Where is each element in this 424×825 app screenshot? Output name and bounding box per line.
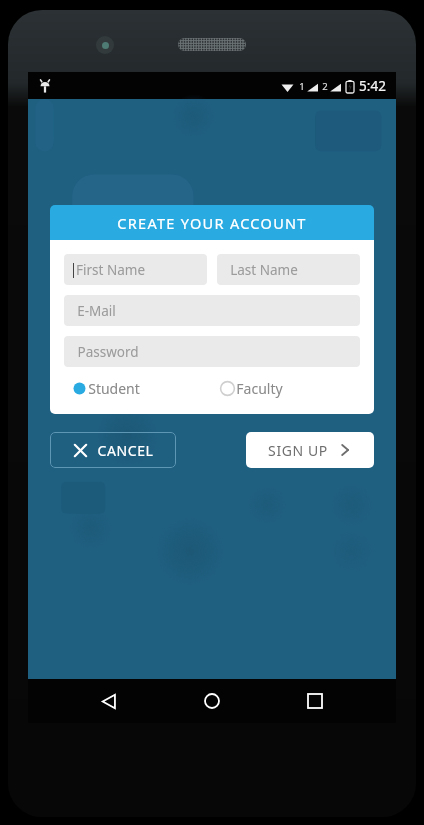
button[interactable]: Back <box>87 679 131 723</box>
staticText: Student <box>88 379 140 398</box>
button[interactable]: CANCEL <box>50 432 176 468</box>
staticText: 1 <box>299 80 305 93</box>
button[interactable]: SIGN UP <box>246 432 374 468</box>
button[interactable]: Password <box>64 336 360 367</box>
staticText: SIGN UP <box>268 441 328 460</box>
button[interactable]: Home <box>190 679 234 723</box>
staticText: CANCEL <box>97 441 154 460</box>
staticText: Last Name <box>230 261 298 279</box>
button[interactable]: Recent apps <box>293 679 337 723</box>
button[interactable]: Faculty <box>212 379 360 398</box>
button[interactable]: Last Name <box>217 254 360 285</box>
button[interactable]: E-Mail <box>64 295 360 326</box>
staticText: 2 <box>322 80 328 93</box>
staticText: 5:42 <box>359 77 386 95</box>
button[interactable]: Student <box>64 379 212 398</box>
staticText: First Name <box>76 261 145 279</box>
staticText: E-Mail <box>77 302 116 320</box>
staticText: Password <box>77 343 139 361</box>
button[interactable]: CREATE YOUR ACCOUNT <box>50 205 374 240</box>
staticText: Faculty <box>236 379 283 398</box>
button[interactable]: First Name <box>64 254 207 285</box>
staticText: CREATE YOUR ACCOUNT <box>117 213 307 233</box>
